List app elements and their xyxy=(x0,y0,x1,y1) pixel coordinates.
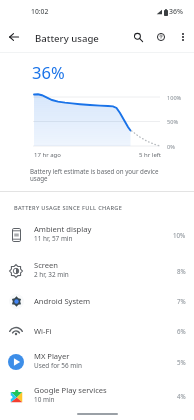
staticText: BATTERY USAGE SINCE FULL CHARGE xyxy=(14,204,123,212)
staticText: MX Player xyxy=(34,351,70,361)
staticText: Android System xyxy=(34,296,91,306)
staticText: 4% xyxy=(177,392,186,400)
button[interactable]: Back xyxy=(2,25,26,49)
staticText: 17 hr ago xyxy=(34,151,61,159)
staticText: 100% xyxy=(167,94,182,102)
staticText: 7% xyxy=(177,297,186,305)
staticText: 10% xyxy=(173,231,186,239)
button[interactable]: Google Play services xyxy=(0,380,194,412)
staticText: Ambient display xyxy=(34,224,92,234)
staticText: 5 hr left xyxy=(131,151,161,159)
staticText: 10 min xyxy=(34,395,55,404)
staticText: 2 hr, 32 min xyxy=(34,270,69,279)
staticText: 5% xyxy=(177,358,186,366)
button[interactable]: Help xyxy=(149,25,173,49)
staticText: 11 hr, 57 min xyxy=(34,234,73,243)
button[interactable]: Android System xyxy=(0,285,194,317)
staticText: 50% xyxy=(167,118,179,126)
button[interactable]: Ambient display xyxy=(0,219,194,251)
staticText: 8% xyxy=(177,267,186,275)
staticText: Battery left estimate is based on your d… xyxy=(30,167,168,183)
staticText: Wi-Fi xyxy=(34,326,52,336)
button[interactable]: More options xyxy=(171,25,194,49)
staticText: 0% xyxy=(167,143,175,151)
staticText: 10:02 xyxy=(31,7,49,16)
staticText: Screen xyxy=(34,260,59,270)
staticText: 36% xyxy=(169,7,183,17)
button[interactable]: Screen xyxy=(0,255,194,287)
button[interactable]: Search xyxy=(126,25,150,49)
button[interactable]: MX Player xyxy=(0,346,194,378)
staticText: 36% xyxy=(32,61,65,83)
staticText: Google Play services xyxy=(34,385,107,395)
button[interactable]: Wi-Fi xyxy=(0,315,194,347)
staticText: Used for 56 min xyxy=(34,361,82,370)
staticText: 6% xyxy=(177,327,186,335)
staticText: Battery usage xyxy=(35,32,99,45)
